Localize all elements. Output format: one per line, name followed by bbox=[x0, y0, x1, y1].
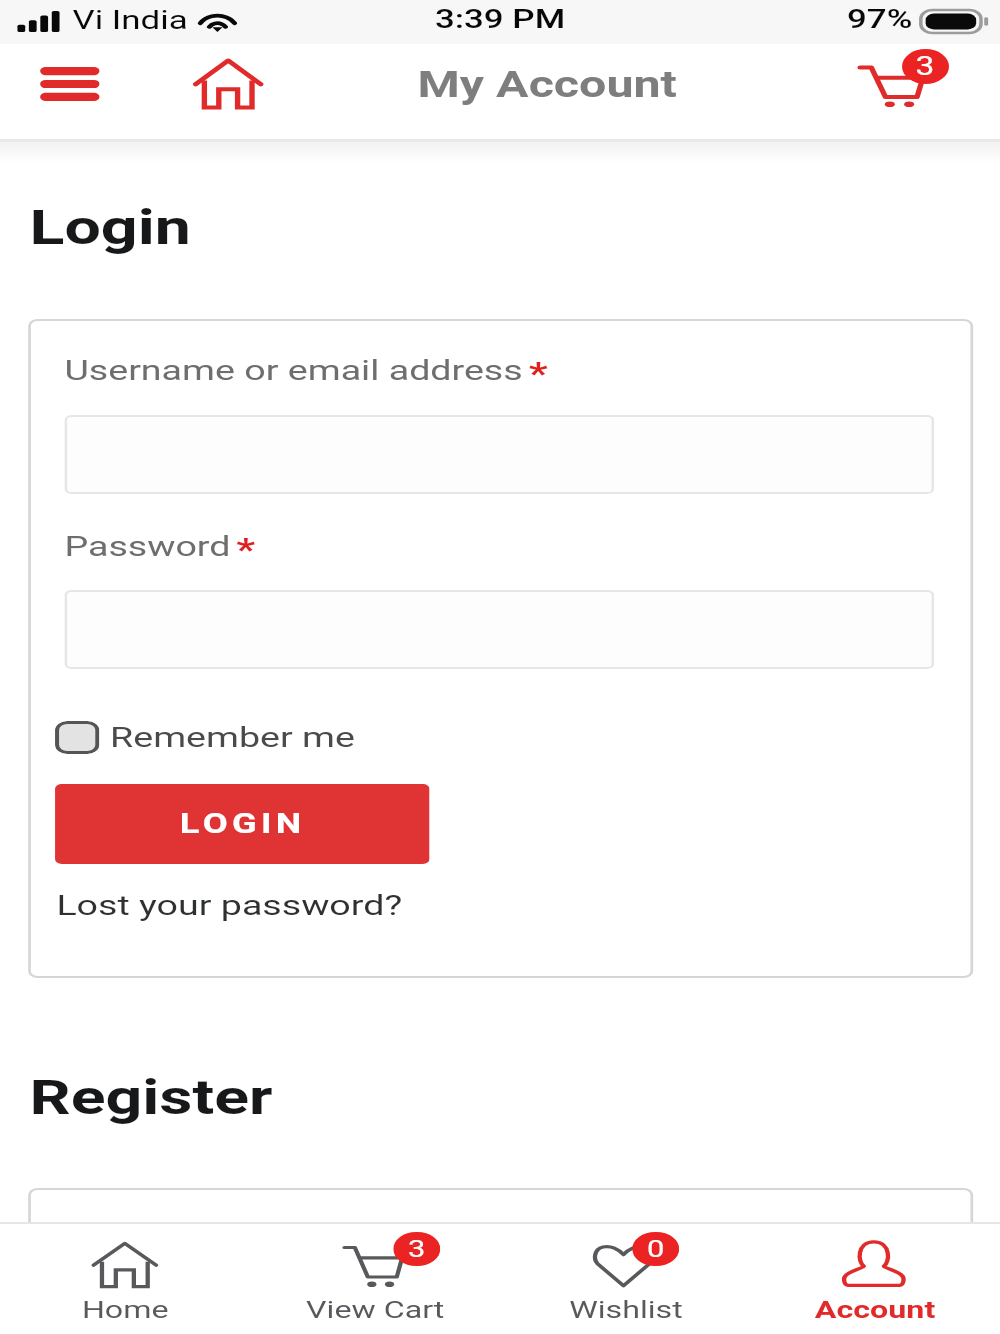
staticText: Vi India bbox=[72, 5, 188, 35]
staticText: 3:39 PM bbox=[435, 4, 566, 34]
button[interactable]: Home bbox=[0, 1224, 251, 1334]
staticText: Home bbox=[82, 1296, 169, 1324]
button[interactable]: LOGIN bbox=[55, 784, 429, 864]
staticText: Login bbox=[29, 199, 192, 255]
staticText: 97% bbox=[847, 4, 913, 34]
button[interactable]: Account bbox=[750, 1224, 1000, 1334]
button[interactable]: Home bbox=[161, 36, 295, 130]
staticText: 3 bbox=[915, 52, 935, 81]
staticText: * bbox=[529, 355, 549, 391]
button[interactable]: Lost your password? bbox=[56, 889, 403, 922]
staticText: 3 bbox=[408, 1236, 425, 1263]
staticText: Register bbox=[29, 1069, 274, 1125]
staticText: Username or email address bbox=[64, 354, 523, 387]
staticText: View Cart bbox=[306, 1296, 446, 1324]
staticText: My Account bbox=[417, 64, 678, 106]
button[interactable] bbox=[64, 415, 934, 494]
staticText: Wishlist bbox=[569, 1296, 683, 1324]
staticText: * bbox=[236, 531, 256, 567]
button[interactable]: 3 bbox=[251, 1224, 501, 1334]
staticText: 0 bbox=[647, 1236, 664, 1263]
staticText: Account bbox=[815, 1296, 936, 1324]
staticText: LOGIN bbox=[180, 808, 306, 840]
button[interactable]: Cart bbox=[821, 44, 1000, 138]
button[interactable]: Remember me bbox=[55, 712, 377, 762]
staticText: Password bbox=[64, 530, 231, 563]
staticText: Remember me bbox=[110, 721, 356, 754]
button[interactable]: Menu bbox=[11, 42, 127, 126]
button[interactable] bbox=[64, 590, 934, 669]
button[interactable]: 0 bbox=[501, 1224, 750, 1334]
